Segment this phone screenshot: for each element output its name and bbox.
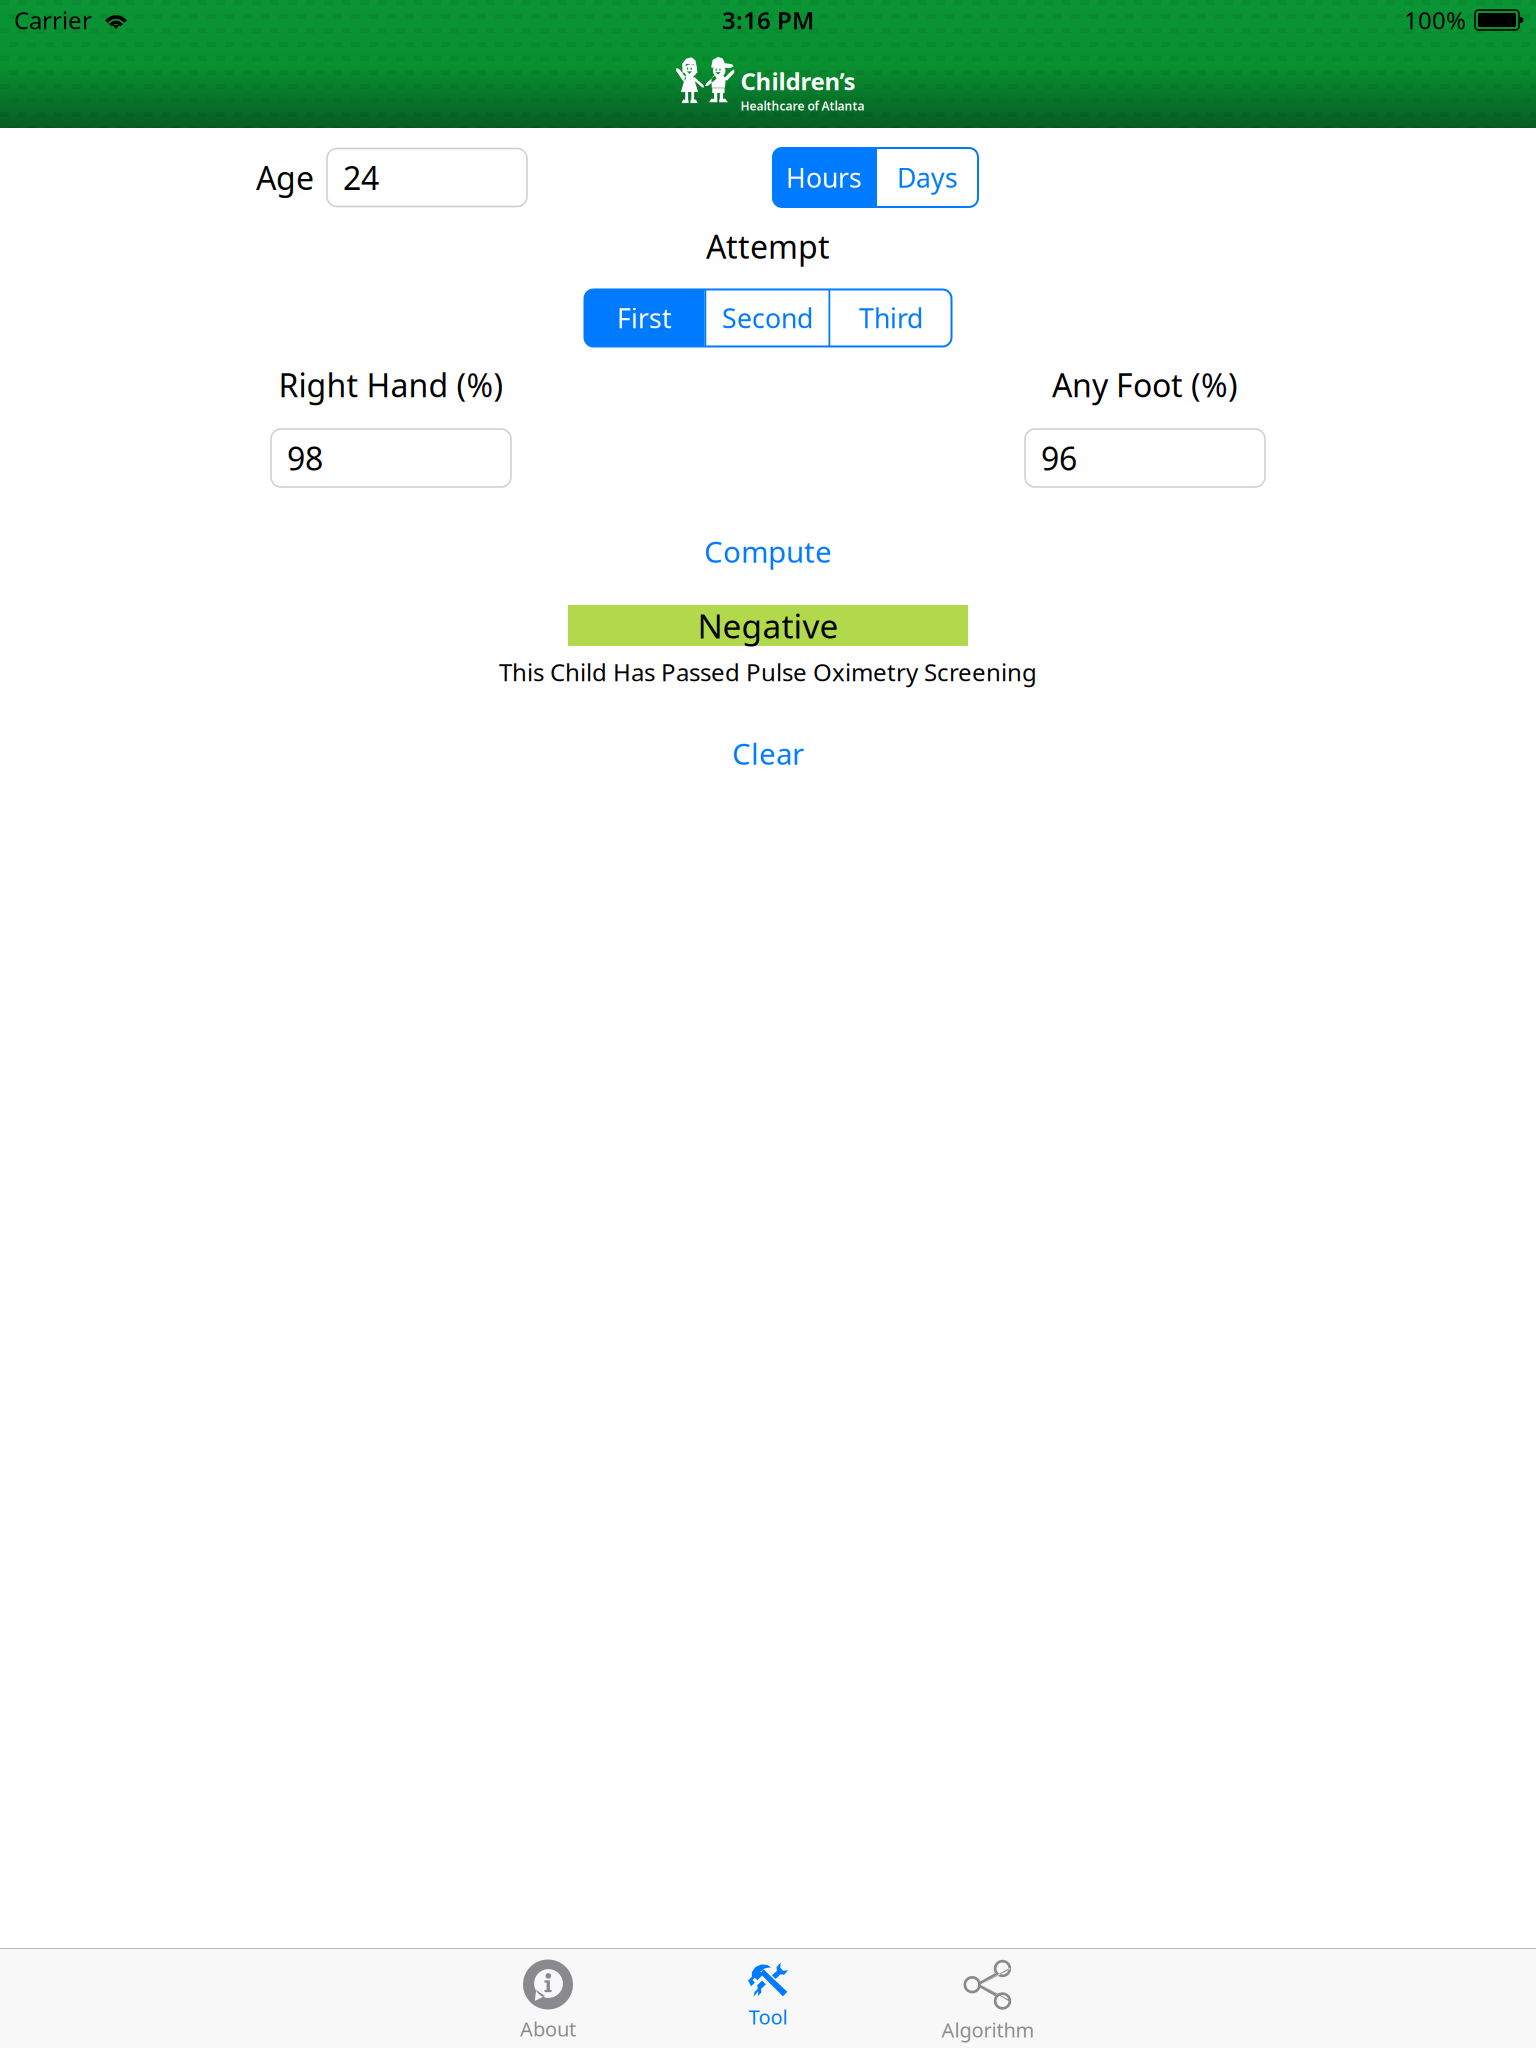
staticText: Hours	[786, 160, 862, 195]
staticText: Days	[897, 160, 958, 195]
staticText: Negative	[697, 603, 838, 648]
button[interactable]: Days	[877, 148, 978, 207]
button[interactable]: Clear	[708, 725, 828, 782]
staticText: Tool	[748, 2003, 787, 2030]
staticText: Children’s	[740, 65, 855, 97]
staticText: Compute	[704, 532, 832, 571]
staticText: Clear	[732, 734, 804, 773]
staticText: 100%	[1404, 4, 1466, 36]
button[interactable]: Compute	[680, 523, 856, 580]
staticText: Carrier	[14, 4, 92, 36]
staticText: Second	[722, 300, 813, 336]
button[interactable]: About	[438, 1949, 658, 2047]
staticText: 96	[1041, 437, 1077, 479]
staticText: Third	[859, 300, 923, 336]
staticText: Any Foot (%)	[1052, 363, 1238, 406]
staticText: 24	[343, 156, 379, 199]
staticText: Attempt	[706, 225, 830, 267]
button[interactable]: Second	[706, 289, 828, 346]
button[interactable]: Tool	[658, 1949, 878, 2047]
staticText: Algorithm	[941, 2016, 1034, 2043]
staticText: Age	[256, 156, 314, 199]
button[interactable]: Hours	[773, 148, 875, 207]
staticText: Healthcare of Atlanta	[740, 98, 864, 114]
staticText: First	[617, 300, 672, 336]
staticText: 98	[287, 437, 323, 479]
button[interactable]: Algorithm	[878, 1949, 1098, 2047]
staticText: 3:16 PM	[722, 4, 814, 36]
staticText: This Child Has Passed Pulse Oximetry Scr…	[499, 656, 1037, 688]
button[interactable]: Third	[830, 289, 951, 346]
button[interactable]: First	[584, 289, 704, 346]
staticText: Right Hand (%)	[278, 363, 503, 406]
staticText: About	[520, 2015, 576, 2042]
